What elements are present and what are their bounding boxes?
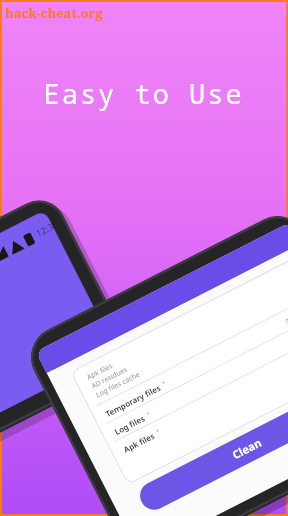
button[interactable]: Easy to Use onboarding slide (0, 0, 288, 516)
